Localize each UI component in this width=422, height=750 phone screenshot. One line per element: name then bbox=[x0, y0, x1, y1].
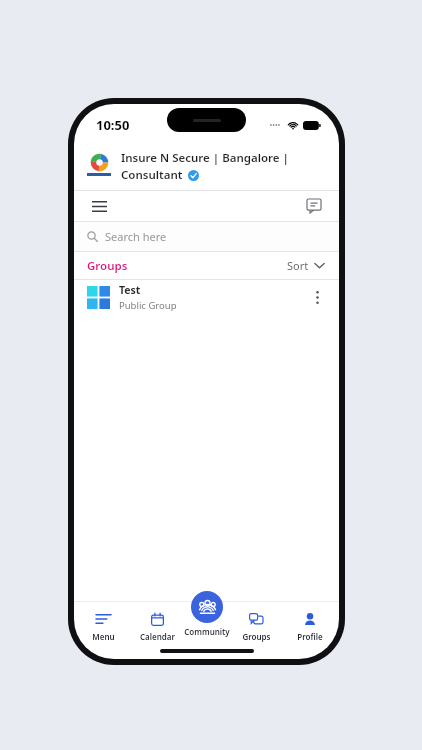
button[interactable]: Test bbox=[74, 280, 339, 314]
staticText: Calendar bbox=[140, 631, 175, 642]
staticText: Search here bbox=[105, 229, 167, 244]
staticText: Insure N Secure | Bangalore | bbox=[121, 150, 289, 166]
button[interactable]: More options bbox=[305, 285, 329, 309]
staticText: Groups bbox=[87, 258, 128, 274]
staticText: Community bbox=[184, 626, 230, 637]
staticText: Groups bbox=[242, 631, 271, 642]
button[interactable]: Profile bbox=[285, 609, 335, 644]
staticText: Sort bbox=[287, 258, 309, 273]
button[interactable]: Calendar bbox=[132, 609, 182, 644]
button[interactable]: Menu bbox=[86, 193, 112, 219]
staticText: 10:50 bbox=[96, 116, 130, 134]
button[interactable]: Sort bbox=[285, 255, 327, 276]
button[interactable]: Community bbox=[191, 591, 223, 623]
button[interactable]: Groups bbox=[231, 609, 281, 644]
button[interactable]: Menu bbox=[78, 609, 128, 644]
button[interactable]: Search here bbox=[74, 222, 339, 251]
staticText: Test bbox=[119, 283, 141, 297]
staticText: Public Group bbox=[119, 299, 177, 312]
button[interactable]: Messages bbox=[301, 193, 327, 219]
button[interactable]: Insure N Secure | Bangalore | bbox=[74, 142, 339, 190]
staticText: Profile bbox=[297, 631, 323, 642]
staticText: Consultant bbox=[121, 167, 183, 183]
staticText: Menu bbox=[92, 631, 115, 642]
